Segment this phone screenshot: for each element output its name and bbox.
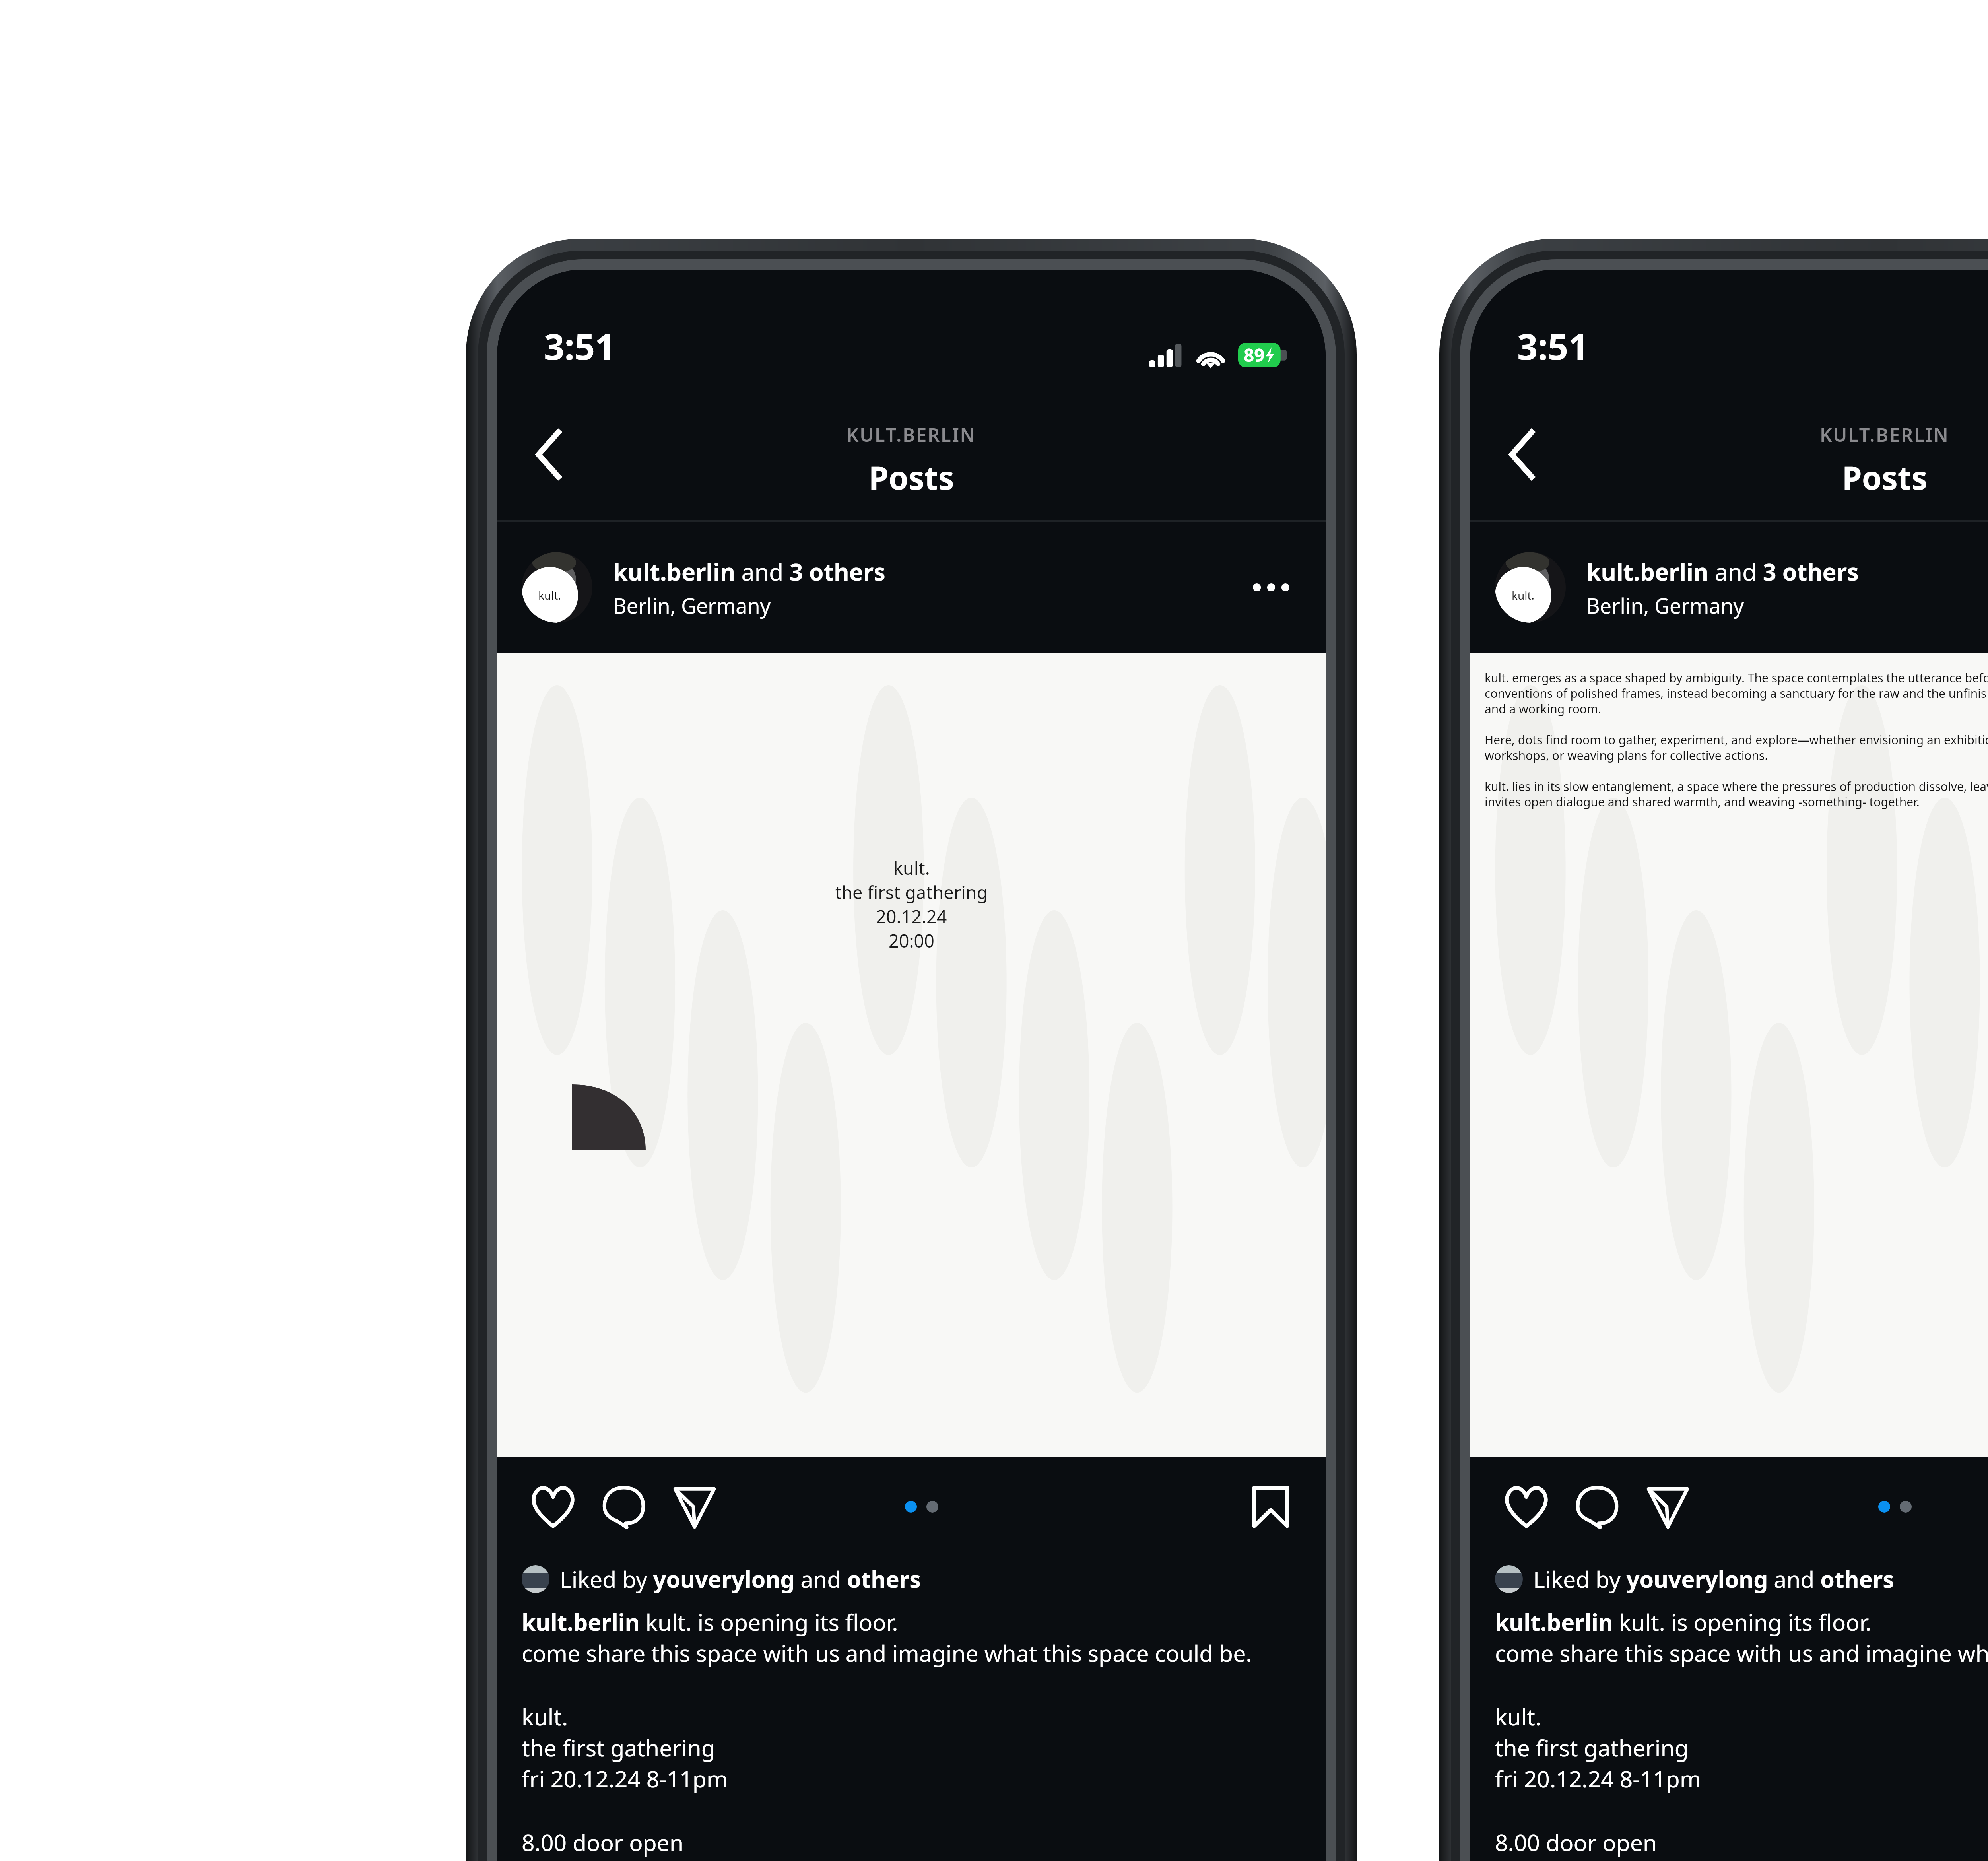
- staticText: the first gathering: [522, 1732, 715, 1763]
- button[interactable]: Liked by youverylong and others: [1495, 1564, 1894, 1595]
- staticText: 89: [1244, 342, 1265, 367]
- staticText: 20.12.24: [876, 904, 947, 929]
- button[interactable]: Save: [1239, 1475, 1303, 1539]
- button[interactable]: More options: [1241, 558, 1301, 617]
- staticText: come share this space with us and imagin…: [522, 1638, 1252, 1669]
- staticText: Posts: [1842, 455, 1928, 499]
- staticText: kult.: [893, 856, 930, 880]
- staticText: 8.00 door open: [1495, 1827, 1657, 1858]
- button[interactable]: kult.: [497, 522, 1326, 653]
- staticText: 8.00 door open: [522, 1827, 684, 1858]
- staticText: Liked by youverylong and others: [1533, 1564, 1894, 1595]
- staticText: kult. emerges as a space shaped by ambig…: [1485, 670, 1988, 717]
- staticText: 20:00: [889, 929, 935, 953]
- staticText: Berlin, Germany: [613, 591, 771, 620]
- staticText: fri 20.12.24 8-11pm: [522, 1763, 728, 1794]
- staticText: Berlin, Germany: [1586, 591, 1744, 620]
- button[interactable]: Share: [659, 1471, 730, 1542]
- staticText: kult. lies in its slow entanglement, a s…: [1485, 778, 1988, 810]
- button[interactable]: Comment: [1562, 1471, 1633, 1542]
- staticText: kult.berlin kult. is opening its floor.: [522, 1607, 898, 1638]
- staticText: the first gathering: [835, 880, 988, 904]
- staticText: kult.: [1495, 1701, 1541, 1732]
- staticText: KULT.BERLIN: [1820, 422, 1949, 447]
- staticText: kult.: [1512, 588, 1535, 603]
- button[interactable]: Comment: [588, 1471, 659, 1542]
- staticText: Liked by youverylong and others: [560, 1564, 921, 1595]
- button[interactable]: Share: [1633, 1471, 1703, 1542]
- button[interactable]: Back: [509, 415, 588, 494]
- staticText: Posts: [869, 455, 954, 499]
- button[interactable]: kult.: [1470, 522, 1988, 653]
- button[interactable]: Liked by youverylong and others: [522, 1564, 921, 1595]
- staticText: kult.berlin and 3 others: [613, 556, 885, 587]
- staticText: KULT.BERLIN: [846, 422, 976, 447]
- staticText: come share this space with us and imagin…: [1495, 1638, 1988, 1669]
- button[interactable]: Like: [518, 1471, 588, 1542]
- staticText: kult.berlin and 3 others: [1586, 556, 1859, 587]
- staticText: fri 20.12.24 8-11pm: [1495, 1763, 1701, 1794]
- staticText: the first gathering: [1495, 1732, 1689, 1763]
- button[interactable]: Like: [1491, 1471, 1562, 1542]
- staticText: kult.: [522, 1701, 568, 1732]
- staticText: 3:51: [1517, 322, 1589, 371]
- staticText: kult.berlin kult. is opening its floor.: [1495, 1607, 1872, 1638]
- staticText: 3:51: [544, 322, 615, 371]
- button[interactable]: Back: [1482, 415, 1562, 494]
- staticText: Here, dots find room to gather, experime…: [1485, 732, 1988, 763]
- staticText: kult.: [538, 588, 561, 603]
